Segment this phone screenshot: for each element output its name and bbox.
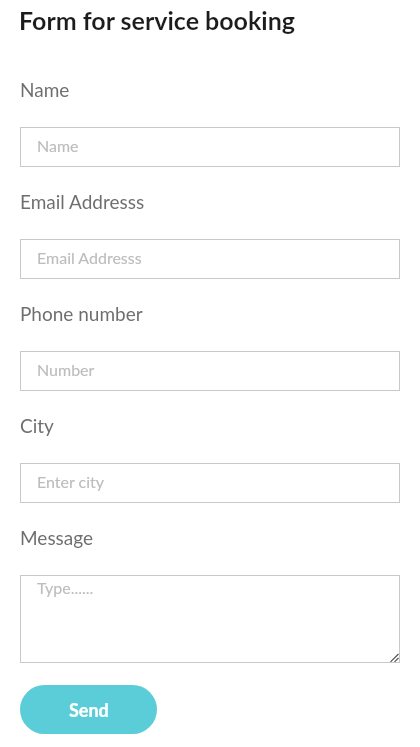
button[interactable]: Send	[20, 685, 157, 734]
staticText: Name	[37, 136, 79, 155]
staticText: Phone number	[20, 302, 143, 325]
staticText: Form for service booking	[19, 5, 295, 35]
button[interactable]: Name	[20, 127, 400, 167]
button[interactable]: Number	[20, 351, 400, 391]
button[interactable]: Email Addresss	[20, 239, 400, 279]
staticText: Send	[69, 699, 109, 721]
staticText: Name	[20, 78, 70, 101]
staticText: Email Addresss	[20, 190, 145, 213]
staticText: Email Addresss	[37, 248, 142, 267]
staticText: City	[20, 414, 54, 437]
button[interactable]: Enter city	[20, 463, 400, 503]
button[interactable]: Type......	[20, 575, 400, 663]
staticText: Number	[37, 360, 95, 379]
staticText: Message	[20, 526, 94, 549]
staticText: Enter city	[37, 472, 105, 491]
staticText: Type......	[37, 578, 94, 597]
